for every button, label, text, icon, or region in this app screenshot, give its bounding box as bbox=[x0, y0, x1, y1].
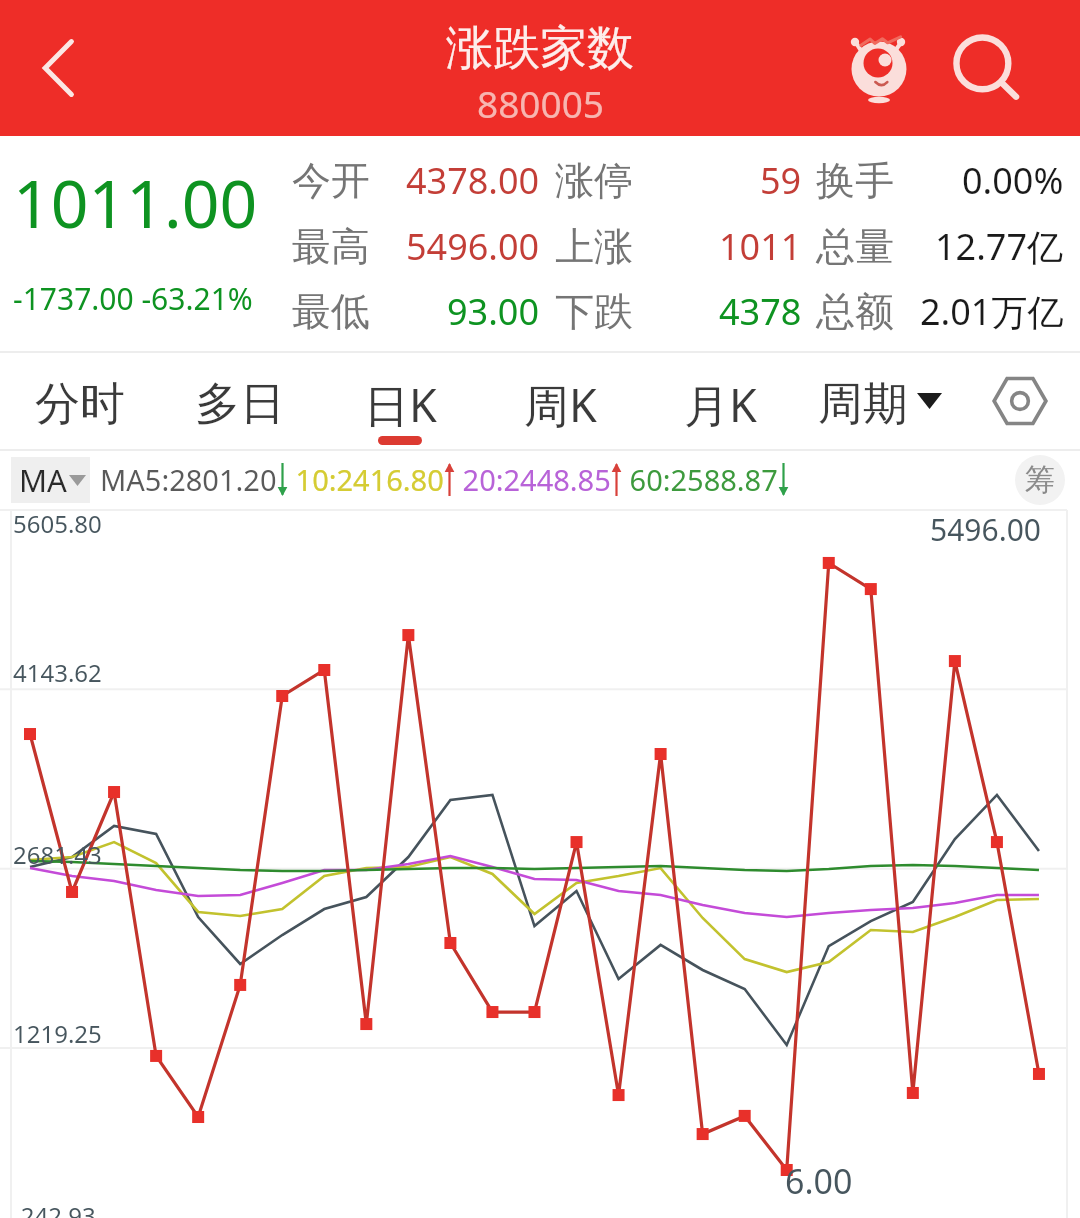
staticText: 涨跌家数 bbox=[446, 19, 634, 78]
staticText: 1011.00 bbox=[13, 157, 258, 247]
staticText: 6.00 bbox=[785, 1158, 853, 1204]
button[interactable]: Indicator settings bbox=[960, 351, 1080, 451]
staticText: 最低 bbox=[292, 287, 370, 336]
button[interactable]: Assistant bbox=[823, 0, 933, 136]
staticText: 2.01万亿 bbox=[920, 287, 1064, 336]
button[interactable]: 分时 bbox=[0, 351, 160, 451]
button[interactable]: 月K bbox=[640, 351, 800, 451]
staticText: 周K bbox=[524, 374, 597, 435]
staticText: 880005 bbox=[477, 78, 604, 128]
staticText: 月K bbox=[684, 374, 757, 435]
staticText: 筹 bbox=[1025, 461, 1055, 499]
button[interactable]: 周期 bbox=[800, 351, 960, 451]
staticText: 5496.00 bbox=[406, 222, 540, 271]
staticText: 总量 bbox=[816, 222, 894, 271]
staticText: 分时 bbox=[35, 376, 125, 433]
staticText: -242.93 bbox=[13, 1199, 96, 1218]
staticText: 换手 bbox=[816, 156, 894, 205]
staticText: 0.00% bbox=[962, 156, 1064, 205]
staticText: 4143.62 bbox=[13, 656, 102, 689]
staticText: 10:2416.80 bbox=[288, 460, 444, 499]
staticText: 涨停 bbox=[555, 156, 633, 205]
staticText: 下跌 bbox=[555, 287, 633, 336]
staticText: 2681.43 bbox=[13, 838, 102, 871]
staticText: 总额 bbox=[816, 287, 894, 336]
staticText: 4378 bbox=[719, 287, 802, 336]
staticText: 93.00 bbox=[447, 287, 540, 336]
staticText: 今开 bbox=[292, 156, 370, 205]
button[interactable]: 筹 bbox=[1015, 455, 1065, 505]
staticText: 多日 bbox=[195, 376, 285, 433]
button[interactable]: 多日 bbox=[160, 351, 320, 451]
staticText: 59 bbox=[760, 156, 802, 205]
staticText: 周期 bbox=[818, 376, 908, 433]
button[interactable]: MA bbox=[19, 459, 86, 501]
staticText: 60:2588.87 bbox=[622, 460, 778, 499]
button[interactable]: Back bbox=[0, 0, 115, 136]
staticText: 1011 bbox=[719, 222, 802, 271]
button[interactable]: 周K bbox=[480, 351, 640, 451]
staticText: MA bbox=[19, 459, 67, 501]
button[interactable]: 日K bbox=[320, 351, 480, 451]
staticText: 上涨 bbox=[555, 222, 633, 271]
staticText: 最高 bbox=[292, 222, 370, 271]
staticText: 日K bbox=[364, 374, 437, 435]
staticText: MA5:2801.20 bbox=[100, 460, 277, 499]
staticText: 1219.25 bbox=[13, 1017, 102, 1050]
staticText: -1737.00 -63.21% bbox=[13, 278, 253, 319]
staticText: 12.77亿 bbox=[935, 222, 1064, 271]
staticText: 5496.00 bbox=[930, 509, 1041, 550]
staticText: 20:2448.85 bbox=[455, 460, 611, 499]
staticText: 5605.80 bbox=[13, 507, 102, 540]
button[interactable]: Search bbox=[932, 0, 1042, 136]
staticText: 4378.00 bbox=[406, 156, 540, 205]
